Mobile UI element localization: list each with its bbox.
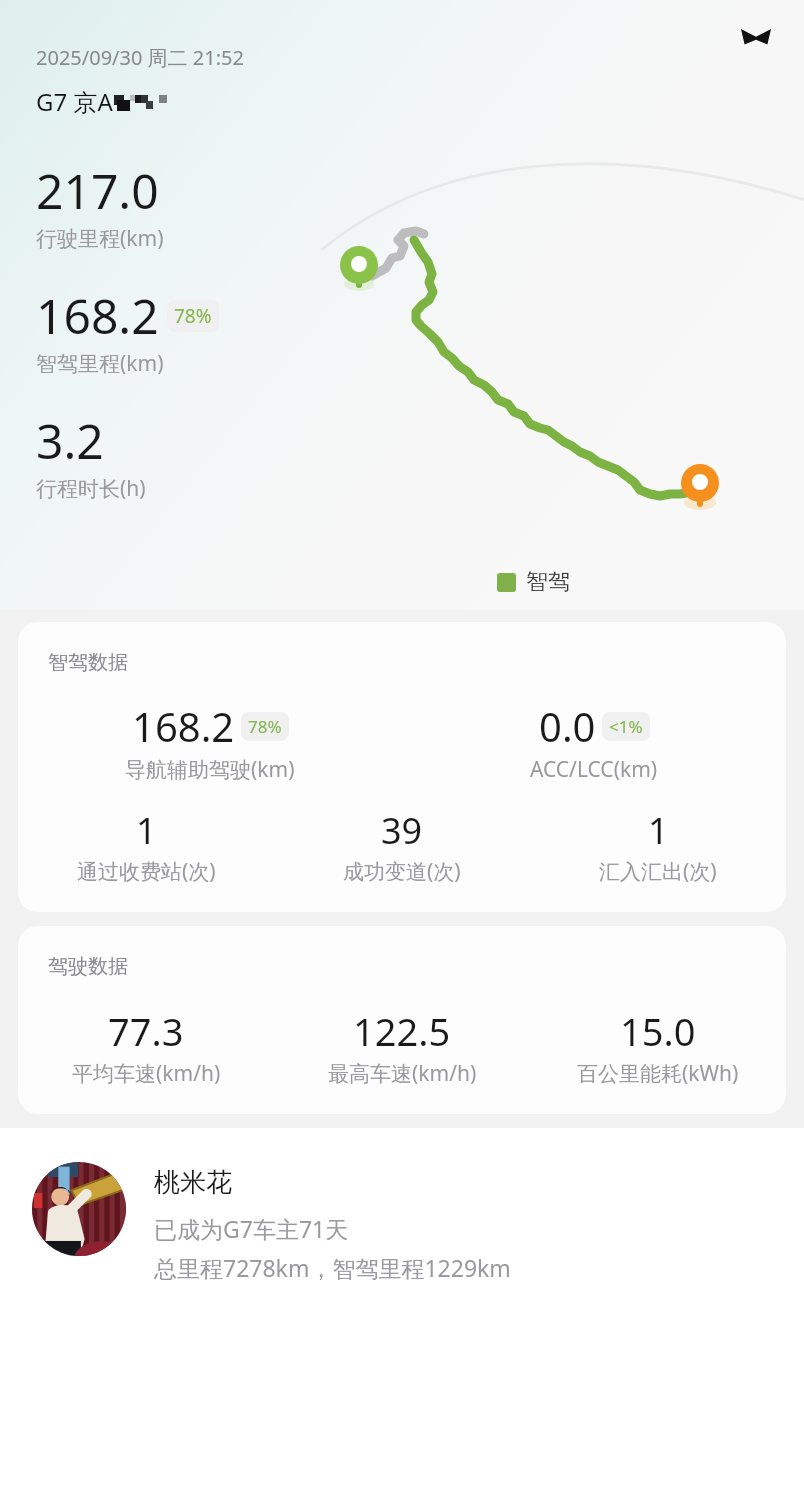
staticText: 通过收费站(次) xyxy=(77,857,216,886)
staticText: 行驶里程(km) xyxy=(36,224,164,253)
staticText: 168.2 xyxy=(132,699,235,753)
staticText: 驾驶数据 xyxy=(48,954,128,979)
staticText: G7 京A xyxy=(36,85,113,118)
staticText: 成功变道(次) xyxy=(343,857,461,886)
staticText: 桃米花 xyxy=(154,1166,232,1199)
staticText: 1 xyxy=(136,806,157,855)
staticText: <1% xyxy=(609,715,643,738)
staticText: 122.5 xyxy=(353,1005,451,1057)
staticText: 2025/09/30 周二 21:52 xyxy=(36,44,244,71)
button[interactable]: 驾驶数据 xyxy=(18,926,786,1114)
staticText: 39 xyxy=(381,806,423,855)
button[interactable]: 智驾数据 xyxy=(18,622,786,912)
staticText: 1 xyxy=(648,806,669,855)
staticText: 最高车速(km/h) xyxy=(328,1059,477,1088)
staticText: 3.2 xyxy=(36,408,104,473)
staticText: 智驾数据 xyxy=(48,650,128,675)
staticText: 78% xyxy=(174,303,212,329)
staticText: 总里程7278km，智驾里程1229km xyxy=(154,1252,511,1283)
staticText: 汇入汇出(次) xyxy=(599,857,717,886)
staticText: 平均车速(km/h) xyxy=(72,1059,221,1088)
staticText: 已成为G7车主71天 xyxy=(154,1213,349,1244)
staticText: 行程时长(h) xyxy=(36,474,146,503)
staticText: 77.3 xyxy=(108,1005,184,1057)
staticText: 168.2 xyxy=(36,283,159,348)
staticText: 智驾里程(km) xyxy=(36,349,164,378)
staticText: 78% xyxy=(248,715,282,738)
staticText: ACC/LCC(km) xyxy=(530,755,658,784)
staticText: 217.0 xyxy=(36,158,159,223)
staticText: 智驾 xyxy=(526,568,570,596)
button[interactable]: 桃米花 xyxy=(0,1128,804,1490)
staticText: 15.0 xyxy=(620,1005,696,1057)
staticText: 导航辅助驾驶(km) xyxy=(125,755,295,784)
staticText: 百公里能耗(kWh) xyxy=(577,1059,739,1088)
button[interactable]: Close xyxy=(730,12,782,64)
staticText: 0.0 xyxy=(539,699,596,753)
